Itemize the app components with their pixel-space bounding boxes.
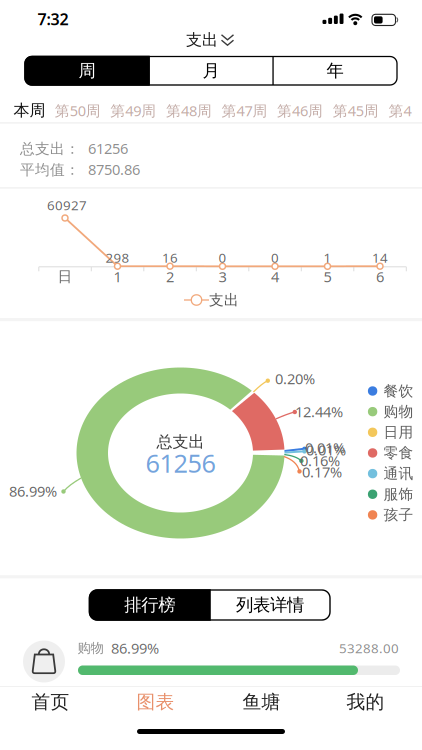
- staticText: 第50周: [55, 101, 101, 120]
- button[interactable]: 第48周: [166, 101, 212, 120]
- staticText: 列表详情: [236, 594, 304, 616]
- staticText: 年: [326, 60, 343, 81]
- staticText: 86.99%: [9, 481, 57, 501]
- staticText: 通讯: [383, 465, 413, 483]
- staticText: 4: [271, 267, 279, 286]
- staticText: 总支出： 61256: [20, 138, 128, 158]
- staticText: 第46周: [277, 101, 323, 120]
- staticText: 首页: [31, 690, 69, 713]
- staticText: 3: [218, 267, 226, 286]
- button[interactable]: 周: [25, 56, 149, 85]
- staticText: 16: [162, 249, 178, 266]
- staticText: 53288.00: [339, 639, 399, 657]
- staticText: 日: [57, 267, 72, 285]
- button[interactable]: 排行榜: [90, 590, 210, 620]
- staticText: 平均值： 8750.86: [20, 159, 140, 179]
- button[interactable]: 第50周: [55, 101, 101, 120]
- staticText: 61256: [145, 446, 215, 480]
- staticText: 孩子: [383, 506, 413, 524]
- staticText: 1: [113, 267, 121, 286]
- staticText: 298: [105, 249, 129, 266]
- staticText: 0.16%: [300, 451, 340, 470]
- button[interactable]: 第49周: [110, 101, 156, 120]
- staticText: 第4: [388, 101, 411, 120]
- staticText: 支出: [209, 291, 239, 309]
- button[interactable]: 月: [149, 56, 273, 85]
- staticText: 本周: [13, 101, 45, 120]
- staticText: 0: [218, 249, 226, 266]
- staticText: 60927: [47, 196, 87, 214]
- staticText: 服饰: [383, 485, 413, 503]
- staticText: 12.44%: [295, 402, 343, 421]
- staticText: 购物: [77, 640, 103, 656]
- staticText: 第47周: [221, 101, 267, 120]
- button[interactable]: 购物: [0, 0, 422, 750]
- button[interactable]: 支出: [0, 0, 422, 750]
- button[interactable]: 图表: [103, 682, 208, 722]
- button[interactable]: 年: [273, 56, 397, 85]
- staticText: 7:32: [37, 8, 68, 30]
- staticText: 零食: [383, 444, 413, 462]
- staticText: 总支出: [156, 432, 204, 452]
- staticText: 86.99%: [111, 638, 159, 658]
- staticText: 鱼塘: [242, 690, 280, 713]
- staticText: 0.01%: [306, 440, 346, 460]
- button[interactable]: 鱼塘: [209, 682, 314, 722]
- staticText: 购物: [383, 403, 413, 421]
- staticText: 图表: [136, 690, 174, 713]
- staticText: 14: [372, 249, 388, 266]
- staticText: 日用: [383, 423, 413, 441]
- staticText: 周: [78, 60, 95, 81]
- staticText: 第45周: [333, 101, 379, 120]
- staticText: 月: [202, 60, 219, 81]
- staticText: 我的: [346, 690, 384, 713]
- button[interactable]: 列表详情: [210, 590, 330, 620]
- staticText: 第49周: [110, 101, 156, 120]
- button[interactable]: 第45周: [333, 101, 379, 120]
- button[interactable]: 本周: [13, 101, 45, 120]
- staticText: 1: [323, 249, 331, 266]
- staticText: 排行榜: [124, 594, 175, 616]
- button[interactable]: 第4: [388, 101, 411, 120]
- button[interactable]: 第46周: [277, 101, 323, 120]
- button[interactable]: 我的: [313, 682, 418, 722]
- staticText: 2: [166, 267, 174, 286]
- staticText: 0: [271, 249, 279, 266]
- button[interactable]: 第47周: [221, 101, 267, 120]
- staticText: 0.17%: [302, 462, 342, 482]
- staticText: 0.01%: [305, 438, 345, 457]
- staticText: 5: [323, 267, 331, 286]
- staticText: 6: [376, 267, 384, 286]
- staticText: 支出: [186, 30, 218, 50]
- button[interactable]: 首页: [0, 682, 103, 722]
- staticText: 餐饮: [383, 382, 413, 400]
- staticText: 第48周: [166, 101, 212, 120]
- staticText: 0.20%: [275, 369, 315, 388]
